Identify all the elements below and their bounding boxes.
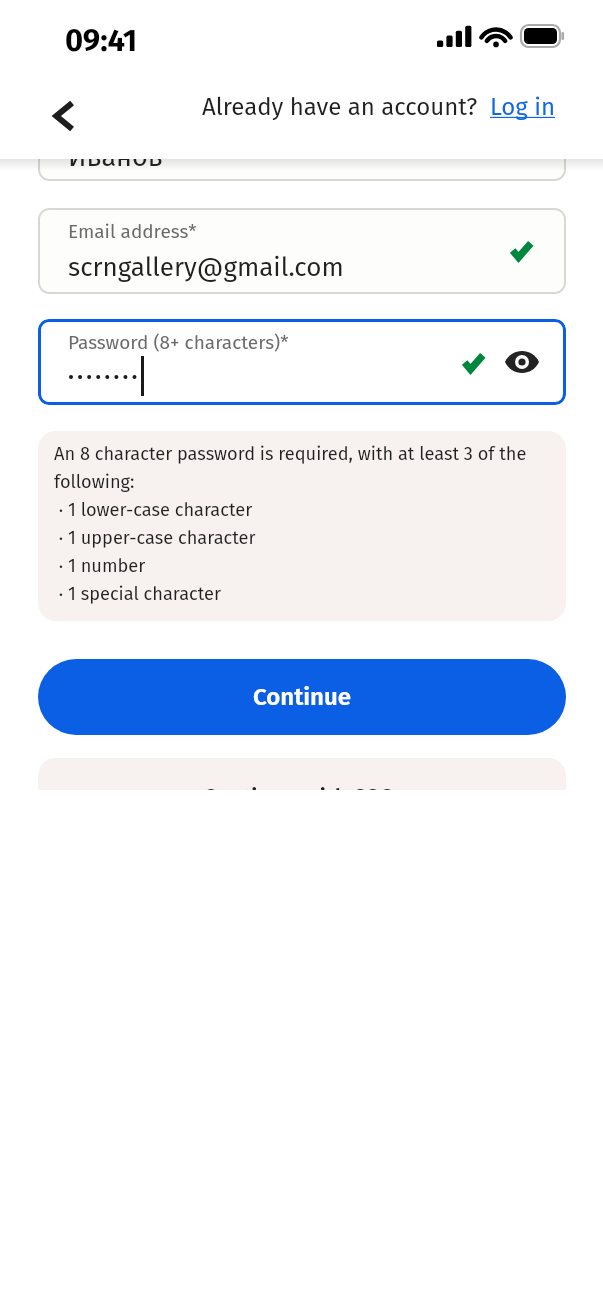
staticText: Already have an account?	[202, 93, 478, 122]
button[interactable]: Continue with SSO	[38, 758, 566, 834]
button[interactable]: Show password	[505, 349, 539, 375]
staticText: 09:41	[65, 22, 138, 59]
button[interactable]: Continue	[38, 659, 566, 735]
staticText: Continue	[253, 683, 351, 712]
button[interactable]: Email address*	[38, 208, 566, 294]
staticText: scrngallery@gmail.com	[68, 252, 344, 283]
button[interactable]: Log in	[490, 93, 556, 122]
button[interactable]: Password (8+ characters)*	[38, 319, 566, 405]
staticText: Log in	[490, 93, 556, 122]
staticText: An 8 character password is required, wit…	[54, 443, 527, 604]
staticText: Иванов	[68, 141, 164, 173]
staticText: Email address*	[68, 220, 197, 243]
staticText: Continue with SSO	[203, 784, 396, 812]
button[interactable]: Иванов	[38, 95, 566, 181]
button[interactable]: Back	[40, 92, 88, 140]
staticText: Password (8+ characters)*	[68, 331, 289, 354]
